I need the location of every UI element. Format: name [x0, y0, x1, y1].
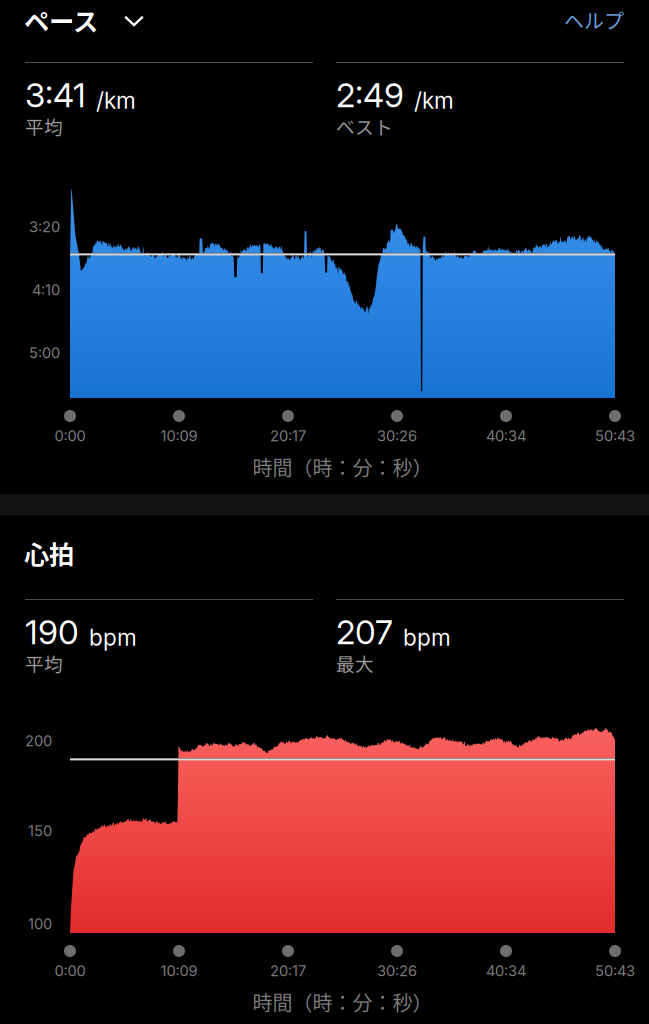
staticText: 時間（時：分：秒） — [252, 987, 432, 1016]
staticText: 40:34 — [486, 962, 526, 980]
button[interactable]: ヘルプ — [504, 7, 624, 33]
staticText: 40:34 — [486, 427, 526, 445]
staticText: /km — [96, 87, 136, 114]
staticText: 10:09 — [160, 962, 197, 980]
staticText: 0:00 — [54, 962, 85, 980]
staticText: 20:17 — [270, 962, 306, 980]
staticText: 200 — [25, 732, 52, 750]
staticText: 20:17 — [270, 427, 306, 445]
staticText: bpm — [89, 624, 137, 651]
staticText: 0:00 — [54, 427, 85, 445]
staticText: 4:10 — [32, 281, 60, 299]
staticText: /km — [414, 87, 454, 114]
staticText: 3:20 — [29, 218, 60, 236]
staticText: 2:49 — [336, 75, 404, 115]
staticText: 最大 — [336, 649, 374, 676]
staticText: 30:26 — [377, 427, 417, 445]
staticText: ヘルプ — [564, 5, 624, 34]
staticText: 5:00 — [29, 344, 60, 362]
staticText: ペース — [24, 2, 98, 38]
staticText: bpm — [403, 624, 451, 651]
staticText: 平均 — [25, 112, 63, 139]
staticText: 50:43 — [595, 427, 635, 445]
staticText: ベスト — [336, 112, 393, 139]
staticText: 3:41 — [25, 75, 86, 115]
staticText: 207 — [336, 612, 393, 652]
staticText: 10:09 — [160, 427, 197, 445]
staticText: 150 — [28, 822, 52, 840]
staticText: 100 — [28, 915, 52, 933]
staticText: 時間（時：分：秒） — [252, 452, 432, 481]
staticText: 190 — [25, 612, 79, 652]
button[interactable]: ペース — [24, 4, 144, 36]
staticText: 平均 — [25, 649, 63, 676]
staticText: 心拍 — [24, 535, 74, 571]
staticText: 30:26 — [377, 962, 417, 980]
staticText: 50:43 — [595, 962, 635, 980]
button[interactable]: 心拍 — [24, 537, 74, 569]
